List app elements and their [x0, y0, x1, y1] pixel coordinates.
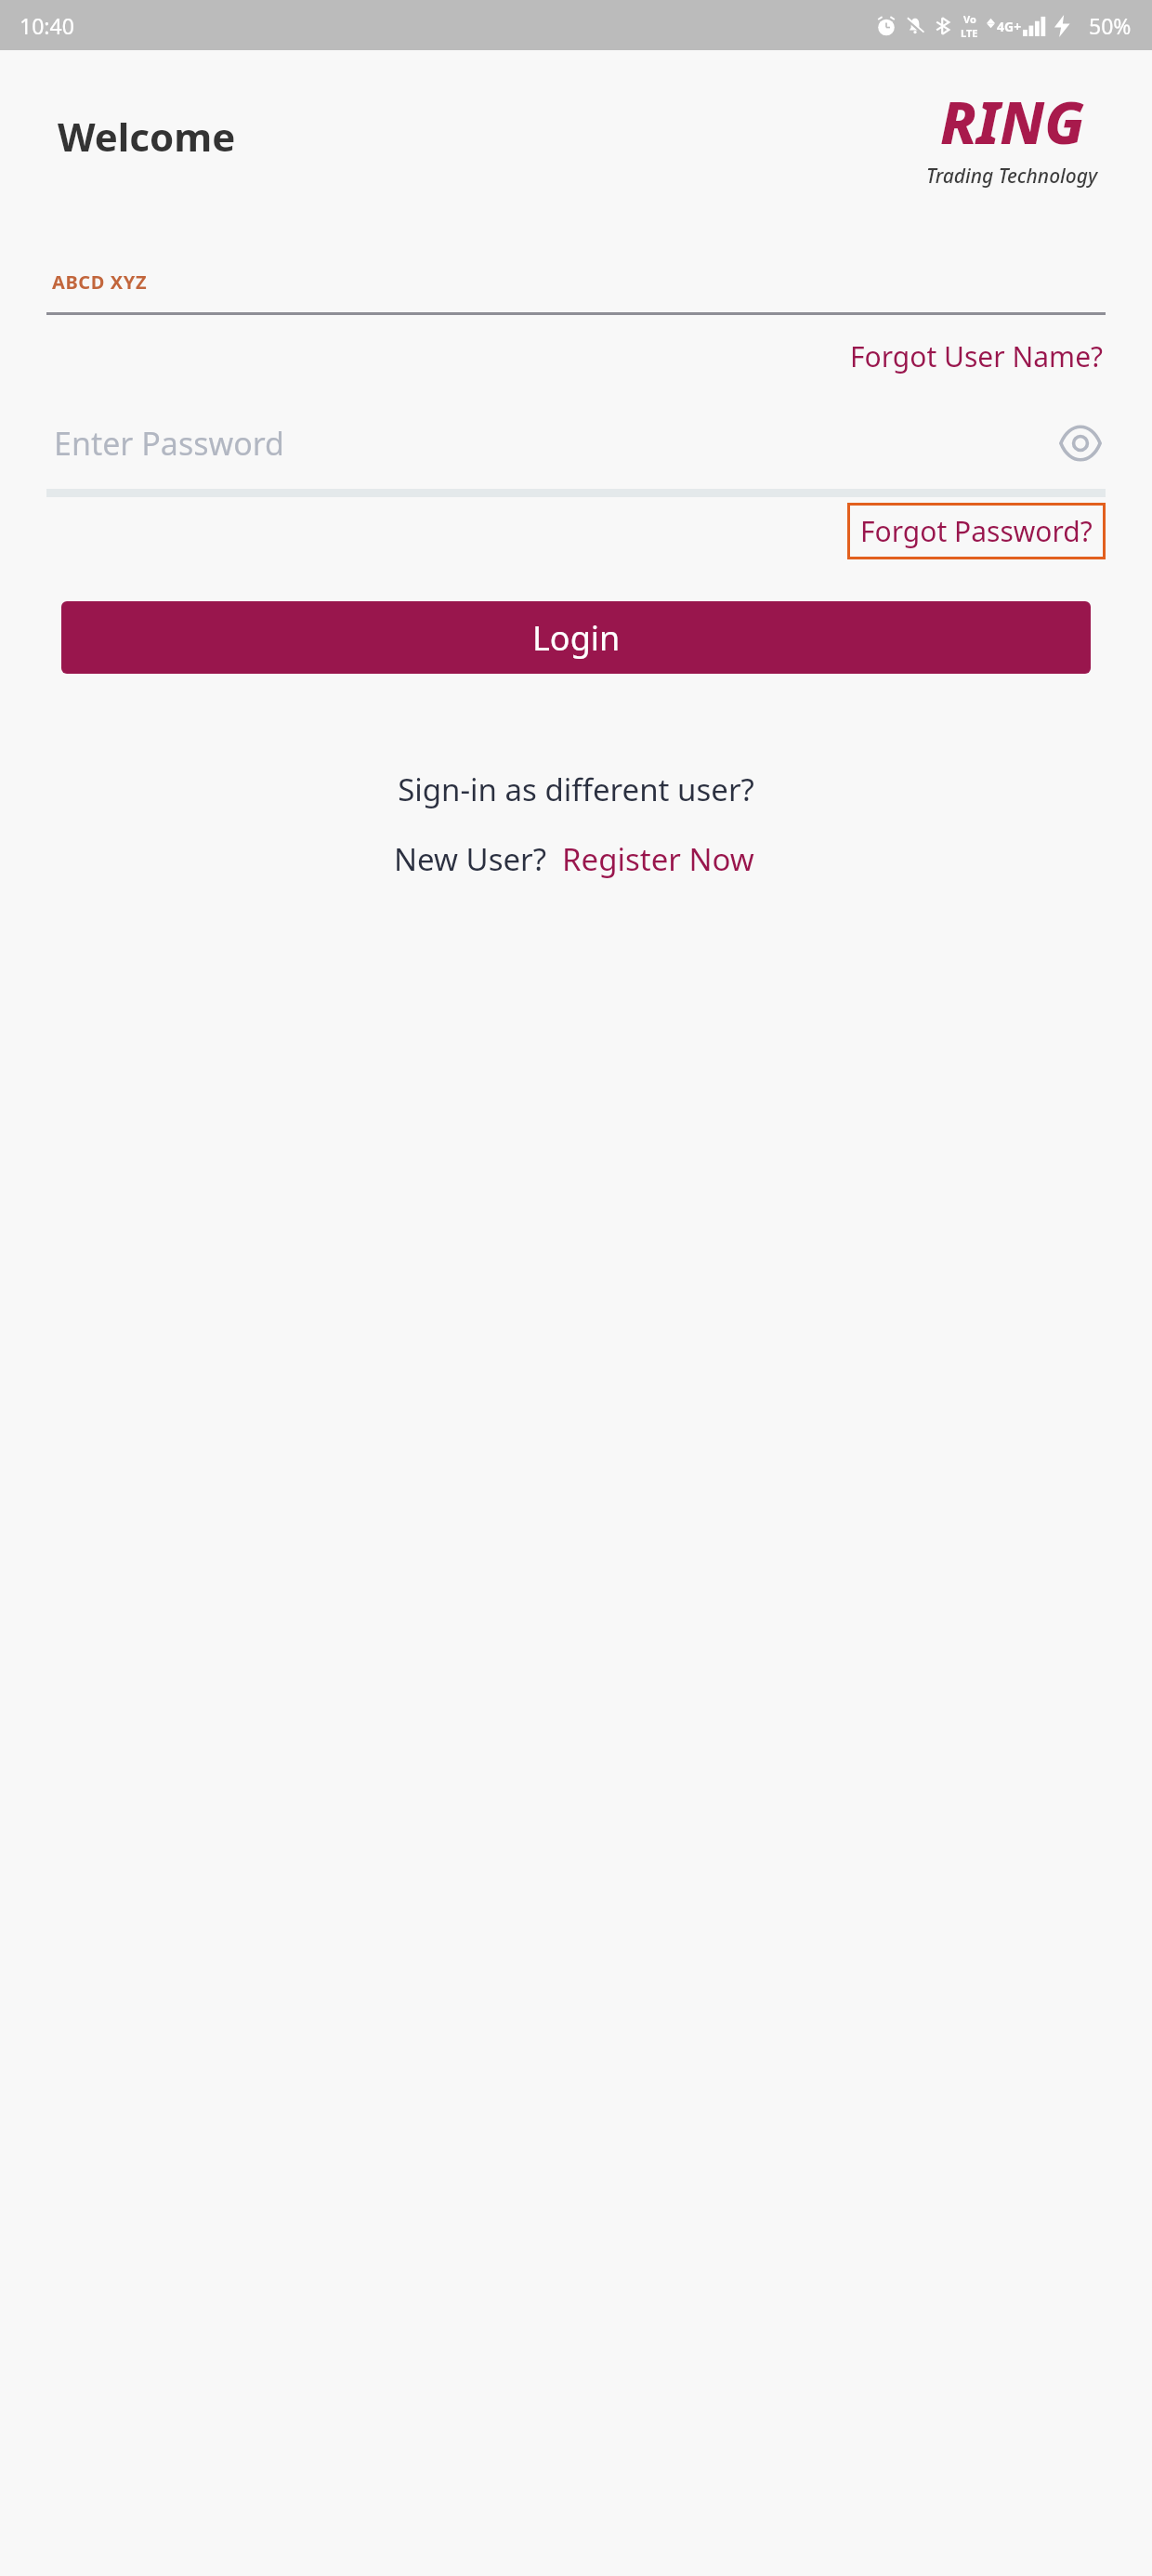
staticText: Welcome: [58, 110, 236, 163]
staticText: Login: [532, 615, 621, 661]
staticText: Register Now: [562, 838, 754, 880]
staticText: RING: [940, 83, 1085, 161]
button[interactable]: Show password: [1055, 418, 1106, 468]
staticText: Trading Technology: [926, 163, 1098, 190]
staticText: 10:40: [20, 11, 74, 40]
staticText: New User?: [394, 838, 547, 880]
staticText: Forgot Password?: [860, 512, 1093, 550]
button[interactable]: Login: [61, 601, 1091, 674]
button[interactable]: Sign-in as different user?: [390, 765, 762, 814]
staticText: 50%: [1089, 11, 1132, 40]
button[interactable]: ABCD XYZ: [46, 269, 1106, 315]
staticText: 4G+: [997, 18, 1022, 35]
button[interactable]: Enter Password: [46, 418, 1106, 468]
button[interactable]: Forgot Password?: [847, 503, 1106, 559]
button[interactable]: Register Now: [558, 835, 758, 884]
staticText: LTE: [961, 26, 978, 40]
staticText: Vo: [963, 12, 976, 26]
staticText: Sign-in as different user?: [398, 769, 754, 810]
staticText: ABCD XYZ: [52, 269, 148, 295]
staticText: Forgot User Name?: [850, 337, 1104, 375]
button[interactable]: Forgot User Name?: [848, 335, 1106, 377]
staticText: Enter Password: [54, 422, 285, 465]
